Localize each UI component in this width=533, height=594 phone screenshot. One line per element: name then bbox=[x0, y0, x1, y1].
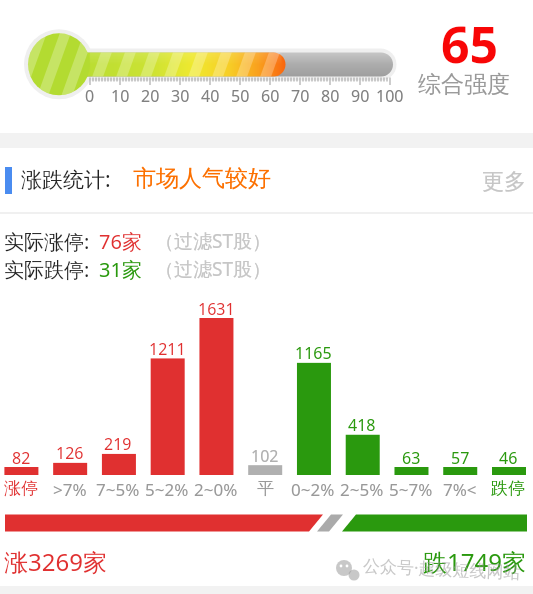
staticText: 63 bbox=[402, 447, 421, 469]
staticText: 实际涨停: bbox=[4, 228, 90, 255]
staticText: 7%< bbox=[443, 478, 477, 501]
staticText: 46 bbox=[499, 447, 518, 469]
staticText: 实际跌停: bbox=[4, 256, 90, 283]
staticText: 20 bbox=[141, 85, 160, 107]
staticText: 更多 bbox=[482, 168, 526, 196]
staticText: 2~5% bbox=[340, 478, 384, 501]
staticText: 40 bbox=[201, 85, 220, 107]
staticText: 1631 bbox=[198, 298, 235, 320]
staticText: >7% bbox=[53, 478, 87, 501]
staticText: 30 bbox=[171, 85, 190, 107]
staticText: 1211 bbox=[149, 338, 186, 360]
staticText: 102 bbox=[251, 445, 279, 467]
staticText: （过滤ST股） bbox=[155, 256, 271, 282]
staticText: 7~5% bbox=[96, 478, 140, 501]
staticText: 10 bbox=[111, 85, 130, 107]
staticText: 57 bbox=[451, 447, 470, 469]
staticText: 5~2% bbox=[145, 478, 189, 501]
staticText: 80 bbox=[321, 85, 340, 107]
staticText: 70 bbox=[291, 85, 310, 107]
button[interactable]: 涨跌统计: bbox=[21, 165, 111, 194]
staticText: 126 bbox=[56, 442, 84, 464]
staticText: 涨3269家 bbox=[4, 545, 107, 578]
staticText: 市场人气较好 bbox=[133, 164, 271, 193]
staticText: 涨停 bbox=[4, 478, 38, 499]
staticText: 219 bbox=[104, 433, 132, 455]
staticText: 31家 bbox=[99, 256, 142, 283]
staticText: 90 bbox=[351, 85, 370, 107]
staticText: 跌1749家 bbox=[423, 545, 526, 578]
staticText: 公众号·超级短线网站 bbox=[363, 554, 521, 583]
staticText: 综合强度 bbox=[418, 70, 510, 99]
staticText: 65 bbox=[441, 10, 499, 78]
staticText: 0 bbox=[85, 85, 95, 107]
button[interactable]: 更多 bbox=[482, 168, 526, 196]
staticText: 0~2% bbox=[291, 478, 335, 501]
staticText: 1165 bbox=[295, 342, 332, 364]
staticText: 涨跌统计: bbox=[21, 165, 111, 194]
staticText: 平 bbox=[257, 478, 274, 499]
staticText: 100 bbox=[376, 85, 404, 107]
staticText: 50 bbox=[231, 85, 250, 107]
staticText: 60 bbox=[261, 85, 280, 107]
staticText: 跌停 bbox=[491, 478, 525, 499]
staticText: 76家 bbox=[99, 228, 142, 255]
staticText: 418 bbox=[348, 414, 376, 436]
staticText: 5~7% bbox=[389, 478, 433, 501]
staticText: 82 bbox=[12, 447, 31, 469]
staticText: （过滤ST股） bbox=[155, 228, 271, 254]
staticText: 2~0% bbox=[194, 478, 238, 501]
